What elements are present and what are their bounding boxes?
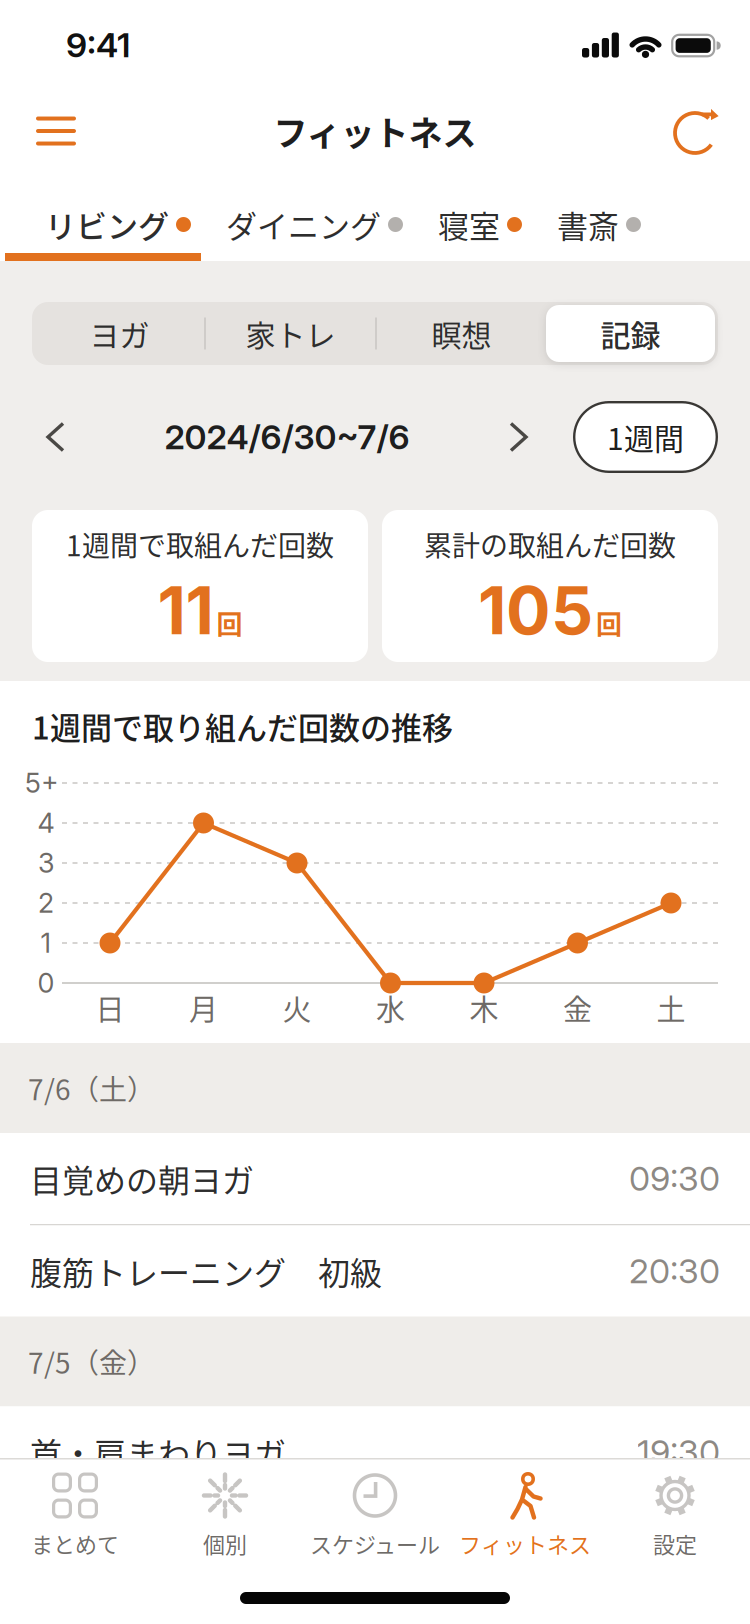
staticText: 目覚めの朝ヨガ <box>30 1155 254 1202</box>
button[interactable]: スケジュール <box>300 1468 450 1559</box>
staticText: 書斎 <box>557 202 619 247</box>
button[interactable]: 腹筋トレーニング 初級 <box>0 1225 750 1316</box>
staticText: 105 <box>478 570 593 650</box>
staticText: 金 <box>563 987 592 1029</box>
staticText: 1週間で取り組んだ回数の推移 <box>32 704 453 748</box>
button[interactable]: 個別 <box>150 1468 300 1559</box>
staticText: 首・肩まわりヨガ <box>30 1429 286 1475</box>
button[interactable]: フィットネス <box>450 1468 600 1559</box>
button[interactable]: 次の週 <box>501 413 536 460</box>
staticText: 5+ <box>25 767 59 799</box>
button[interactable]: メニュー <box>26 106 86 155</box>
button[interactable]: 家トレ <box>206 305 375 362</box>
staticText: ダイニング <box>226 202 381 247</box>
button[interactable]: ダイニング <box>226 202 403 247</box>
staticText: スケジュール <box>310 1527 440 1559</box>
staticText: 記録 <box>600 312 660 355</box>
staticText: 9:41 <box>66 24 130 65</box>
button[interactable]: 寝室 <box>438 202 522 247</box>
staticText: 水 <box>376 987 405 1029</box>
button[interactable]: 1週間 <box>573 401 718 473</box>
button[interactable]: 更新 <box>668 102 726 160</box>
staticText: 回 <box>596 604 622 642</box>
staticText: 木 <box>469 987 498 1029</box>
staticText: 7/5（金） <box>28 1341 155 1382</box>
staticText: フィットネス <box>459 1527 591 1559</box>
staticText: リビング <box>45 202 169 247</box>
staticText: 腹筋トレーニング 初級 <box>30 1248 382 1294</box>
staticText: 11 <box>157 570 213 650</box>
staticText: 2 <box>38 887 54 919</box>
staticText: 3 <box>38 847 54 879</box>
staticText: 日 <box>95 987 124 1029</box>
staticText: 19:30 <box>637 1431 720 1472</box>
staticText: 瞑想 <box>431 312 491 355</box>
staticText: 2024/6/30~7/6 <box>164 416 409 457</box>
button[interactable]: 目覚めの朝ヨガ <box>0 1133 750 1224</box>
button[interactable]: 首・肩まわりヨガ <box>0 1406 750 1497</box>
staticText: 寝室 <box>438 202 500 247</box>
staticText: フィットネス <box>273 106 476 156</box>
staticText: 1週間で取組んだ回数 <box>66 524 334 564</box>
staticText: 0 <box>37 967 54 999</box>
button[interactable]: まとめて <box>0 1468 150 1559</box>
button[interactable]: 書斎 <box>557 202 641 247</box>
staticText: 設定 <box>653 1527 697 1559</box>
button[interactable]: 記録 <box>546 305 715 362</box>
staticText: 月 <box>189 987 218 1029</box>
staticText: 7/6（土） <box>28 1068 155 1108</box>
staticText: 個別 <box>203 1527 247 1559</box>
button[interactable]: 設定 <box>600 1468 750 1559</box>
staticText: 回 <box>216 604 242 642</box>
button[interactable]: 瞑想 <box>377 305 546 362</box>
button[interactable]: ヨガ <box>35 305 204 362</box>
staticText: 20:30 <box>629 1250 720 1291</box>
staticText: ヨガ <box>89 312 149 355</box>
staticText: 09:30 <box>629 1158 720 1199</box>
staticText: 火 <box>282 987 311 1029</box>
staticText: 土 <box>656 987 685 1029</box>
staticText: 4 <box>37 807 54 839</box>
button[interactable]: リビング <box>45 202 191 247</box>
staticText: 累計の取組んだ回数 <box>424 524 676 564</box>
staticText: まとめて <box>31 1527 119 1559</box>
staticText: 1週間 <box>607 415 684 459</box>
staticText: 1 <box>40 927 51 959</box>
staticText: 家トレ <box>245 312 335 355</box>
button[interactable]: 前の週 <box>38 413 73 460</box>
